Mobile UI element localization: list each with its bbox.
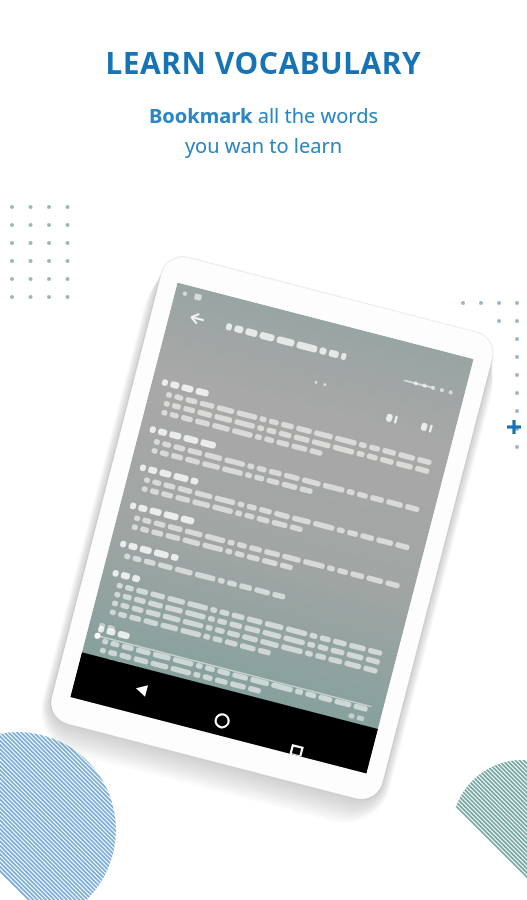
button[interactable]: Learn Vocabulary promotional screen bbox=[0, 0, 527, 900]
